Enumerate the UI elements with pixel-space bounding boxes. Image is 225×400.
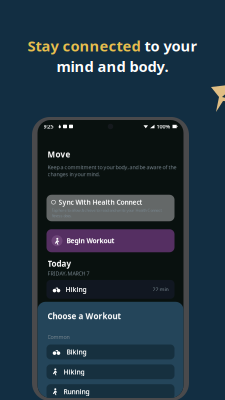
staticText: Tap here to allow Achieve to read and wr… — [51, 208, 161, 218]
staticText: Running — [63, 387, 89, 396]
staticText: Choose a Workout — [47, 311, 120, 321]
staticText: 100% — [156, 123, 170, 130]
staticText: Move — [47, 149, 70, 160]
staticText: mind and body. — [56, 56, 168, 76]
staticText: 22 min — [152, 286, 168, 293]
staticText: 9:25 — [43, 123, 53, 130]
button[interactable]: Hiking — [46, 364, 174, 379]
staticText: Keep a commitment to your body, and be a… — [47, 164, 176, 178]
staticText: Hiking — [65, 285, 86, 294]
staticText: Stay connected — [27, 36, 140, 55]
staticText: Begin Workout — [66, 236, 114, 245]
staticText: FRIDAY, MARCH 7 — [47, 270, 89, 277]
staticText: Common — [47, 333, 69, 340]
staticText: Hiking — [63, 367, 84, 376]
button[interactable]: Biking — [46, 344, 174, 359]
staticText: Biking — [66, 347, 86, 356]
button[interactable]: Running — [46, 384, 174, 399]
staticText: Sync With Health Connect — [58, 198, 142, 207]
button[interactable]: Sync With Health Connect — [46, 195, 174, 221]
button[interactable]: Begin Workout — [46, 229, 174, 252]
staticText: Today — [47, 258, 71, 269]
button[interactable]: Hiking — [46, 280, 174, 299]
staticText: to your — [144, 36, 197, 55]
